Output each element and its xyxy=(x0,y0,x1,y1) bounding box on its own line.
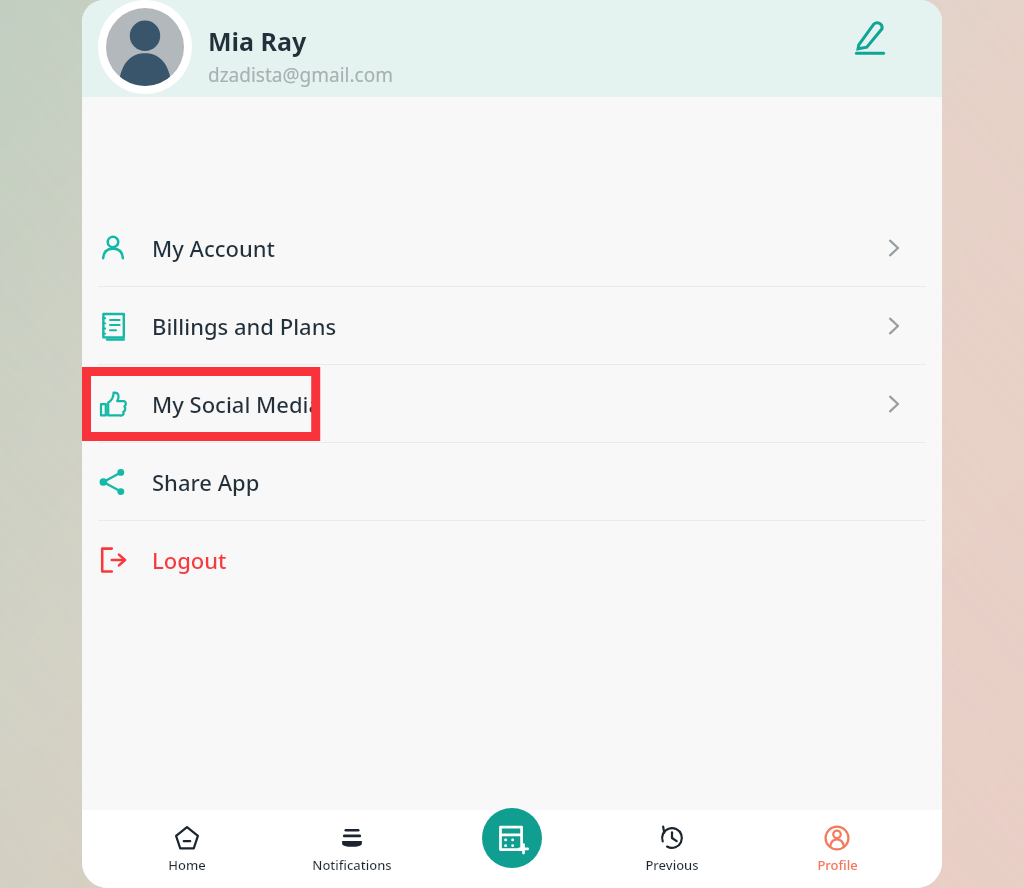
staticText: Profile xyxy=(817,856,858,874)
staticText: Previous xyxy=(645,856,699,874)
button[interactable]: Notifications xyxy=(292,819,412,880)
button[interactable]: Home xyxy=(127,819,247,880)
button[interactable]: Billings and Plans xyxy=(82,287,942,365)
button[interactable]: My Account xyxy=(82,209,942,287)
staticText: My Social Media xyxy=(152,389,322,419)
staticText: Billings and Plans xyxy=(152,311,337,341)
button[interactable]: Edit profile xyxy=(850,16,890,56)
staticText: Share App xyxy=(152,467,260,497)
staticText: Notifications xyxy=(312,856,392,874)
staticText: Home xyxy=(168,856,206,874)
button[interactable]: Share App xyxy=(82,443,942,521)
button[interactable]: Previous xyxy=(612,819,732,880)
button[interactable]: Logout xyxy=(82,521,942,599)
staticText: Logout xyxy=(152,545,227,575)
staticText: dzadista@gmail.com xyxy=(208,62,393,88)
button[interactable]: My Social Media xyxy=(82,365,942,443)
button[interactable]: Profile xyxy=(777,819,897,880)
button[interactable]: Profile photo xyxy=(106,8,184,86)
staticText: My Account xyxy=(152,233,276,263)
staticText: Mia Ray xyxy=(208,24,307,58)
button[interactable]: Add new xyxy=(482,808,542,868)
